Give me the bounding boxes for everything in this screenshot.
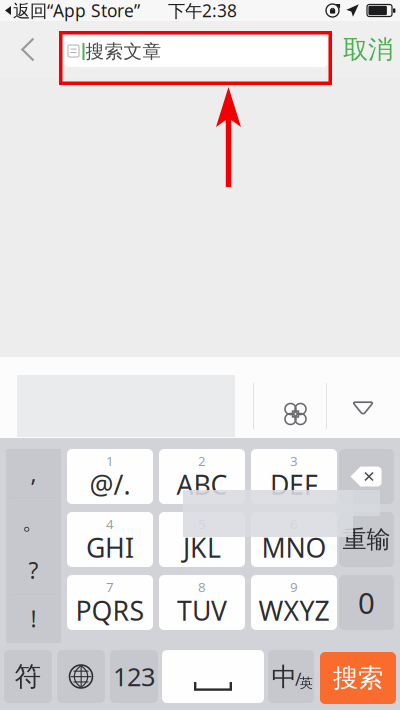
button[interactable]: 。 [6,497,61,546]
button[interactable]: 5 [159,512,245,567]
button[interactable]: 删除 [339,449,394,504]
button[interactable]: 取消 [338,21,398,78]
staticText: ABC [176,467,227,502]
button[interactable]: 重输 [339,512,394,567]
staticText: 1 [106,452,114,470]
button[interactable]: , [6,449,61,497]
button[interactable]: 搜索 [320,652,396,704]
staticText: 符 [14,660,41,693]
staticText: 返回“App Store” [13,0,140,22]
button[interactable]: 2 [159,449,245,504]
button[interactable]: 输入法选项 [253,378,326,438]
staticText: 取消 [343,34,393,65]
staticText: 3 [290,452,298,470]
staticText: 中 [271,661,296,692]
button[interactable]: ? [6,546,61,594]
staticText: WXYZ [258,593,329,628]
button[interactable]: 1 [67,449,153,504]
button[interactable]: 6 [251,512,337,567]
button[interactable]: 搜索文章 [63,35,328,67]
staticText: / [295,667,301,690]
staticText: PQRS [75,593,144,628]
staticText: DEF [270,467,318,502]
button[interactable]: 中 [268,650,314,703]
button[interactable]: 符 [4,650,52,703]
staticText: 。 [22,508,45,536]
staticText: GHI [86,530,134,565]
staticText: ! [30,604,36,634]
button[interactable]: 空格 [162,650,264,703]
button[interactable]: ! [6,594,61,643]
button[interactable]: 3 [251,449,337,504]
button[interactable]: 9 [251,575,337,630]
staticText: 下午2:38 [168,0,237,22]
button[interactable]: 0 [339,575,394,630]
button[interactable]: 8 [159,575,245,630]
button[interactable]: 切换键盘 [57,650,105,703]
staticText: , [30,458,36,488]
button[interactable]: 123 [110,650,158,703]
staticText: 2 [198,452,206,470]
button[interactable]: 7 [67,575,153,630]
staticText: MNO [261,530,326,565]
button[interactable]: 收起键盘 [326,378,400,438]
staticText: 9 [290,578,298,596]
staticText: JKL [183,530,221,565]
staticText: 搜索文章 [85,40,161,63]
staticText: 英 [299,675,312,691]
staticText: 4 [106,515,114,533]
staticText: TUV [177,593,227,628]
staticText: 5 [198,515,206,533]
staticText: 8 [198,578,206,596]
staticText: 0 [358,583,375,622]
staticText: 搜索 [333,662,383,693]
staticText: @/. [89,467,130,502]
staticText: ? [28,555,38,585]
button[interactable]: 返回 [9,21,47,78]
staticText: 重输 [342,525,390,554]
staticText: 7 [106,578,114,596]
staticText: 6 [290,515,298,533]
staticText: 123 [113,660,155,693]
button[interactable]: 4 [67,512,153,567]
